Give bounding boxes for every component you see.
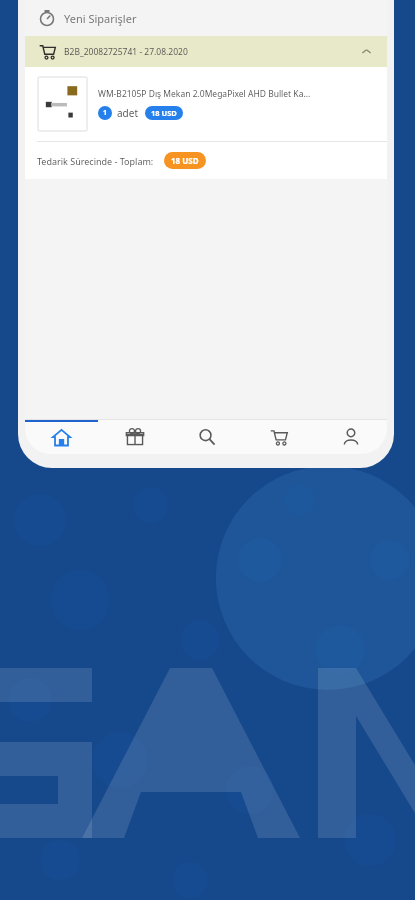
- button[interactable]: Cart: [243, 420, 315, 454]
- button[interactable]: Yeni Siparişler: [25, 0, 387, 36]
- button[interactable]: Search: [171, 420, 243, 454]
- staticText: 1: [103, 108, 108, 118]
- staticText: WM-B2105P Dış Mekan 2.0MegaPixel AHD Bul…: [98, 88, 311, 100]
- button[interactable]: Profile: [315, 420, 387, 454]
- button[interactable]: B2B_20082725741 - 27.08.2020: [25, 36, 387, 67]
- staticText: Yeni Siparişler: [64, 11, 137, 26]
- button[interactable]: Home: [25, 420, 98, 454]
- button[interactable]: Offers: [98, 420, 171, 454]
- staticText: 18 USD: [151, 108, 177, 118]
- staticText: adet: [117, 106, 139, 120]
- staticText: Tedarik Sürecinde - Toplam:: [37, 155, 154, 167]
- button[interactable]: Tedarik Sürecinde - Toplam:: [25, 142, 387, 179]
- button[interactable]: WM-B2105P Dış Mekan 2.0MegaPixel AHD Bul…: [25, 67, 387, 141]
- staticText: B2B_20082725741 - 27.08.2020: [64, 46, 360, 58]
- staticText: 18 USD: [171, 155, 199, 166]
